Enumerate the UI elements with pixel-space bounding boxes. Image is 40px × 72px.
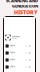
button[interactable] xyxy=(4,49,35,56)
button[interactable] xyxy=(4,63,35,70)
staticText: HISTORY xyxy=(14,9,38,16)
staticText: GENERATION xyxy=(12,3,38,9)
staticText: SCANNING AND xyxy=(6,0,38,3)
button[interactable] xyxy=(4,42,35,49)
button[interactable] xyxy=(4,56,35,63)
